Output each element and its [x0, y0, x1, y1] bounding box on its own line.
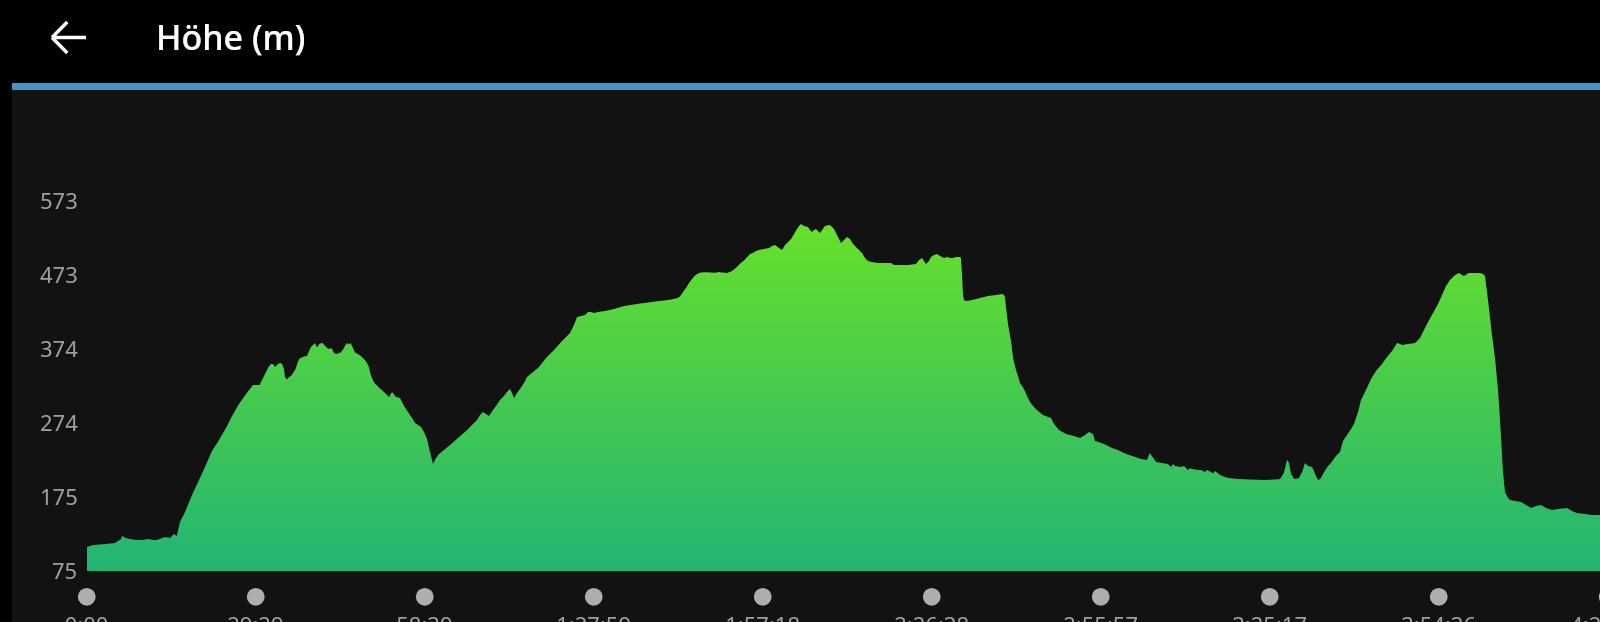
staticText: Höhe (m)	[156, 14, 306, 60]
button[interactable]: Back	[52, 0, 110, 74]
